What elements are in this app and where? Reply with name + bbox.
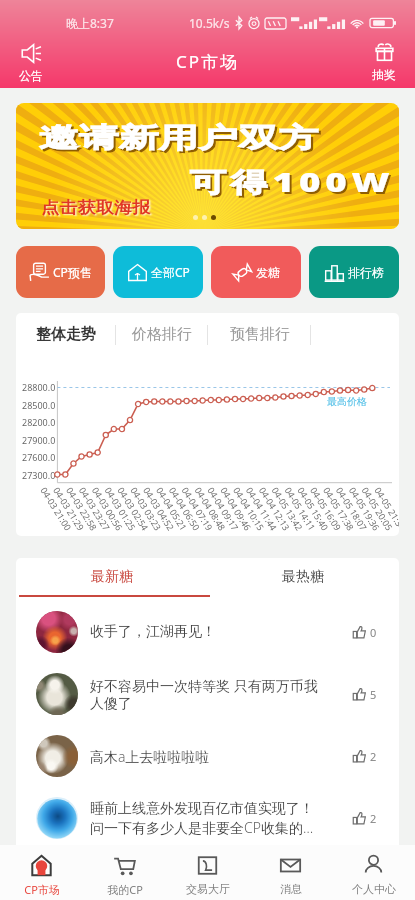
staticText: 排行榜 [348, 265, 384, 280]
staticText: 好不容易中一次特等奖 只有两万币我 [90, 676, 318, 695]
staticText: 整体走势 [36, 325, 96, 344]
staticText: 问一下有多少人是非要全CP收集的… [90, 818, 314, 837]
button[interactable]: 睡前上线意外发现百亿市值实现了！ [16, 787, 399, 849]
button[interactable]: CP预售 [16, 246, 105, 298]
staticText: 高木a上去啦啦啦啦 [90, 747, 210, 766]
staticText: 可得100W [190, 163, 395, 200]
button[interactable]: 价格排行 [116, 313, 208, 356]
button[interactable]: 我的CP [83, 845, 166, 900]
button[interactable]: 好不容易中一次特等奖 只有两万币我 [16, 663, 399, 725]
staticText: 预售排行 [230, 325, 290, 344]
staticText: 我的CP [107, 882, 143, 897]
staticText: 最新糖 [91, 568, 133, 586]
staticText: 个人中心 [352, 882, 396, 896]
button[interactable]: 最热糖 [207, 558, 399, 595]
staticText: 消息 [280, 882, 302, 896]
staticText: 5 [370, 687, 377, 702]
button[interactable]: 最新糖 [16, 558, 207, 595]
button[interactable]: 0 [349, 625, 381, 640]
staticText: 收手了，江湖再见！ [90, 623, 216, 641]
staticText: CP预售 [53, 264, 92, 280]
staticText: 公告 [19, 68, 43, 83]
button[interactable]: 邀请新用户双方 [16, 103, 399, 229]
staticText: 睡前上线意外发现百亿市值实现了！ [90, 800, 314, 818]
staticText: CP市场 [176, 50, 240, 73]
staticText: 晚上8:37 [66, 15, 114, 31]
staticText: 邀请新用户双方 [39, 121, 319, 155]
staticText: 点击获取海报 [41, 198, 150, 218]
staticText: 抽奖 [372, 67, 396, 82]
button[interactable]: 整体走势 [16, 313, 116, 356]
staticText: 2 [370, 749, 377, 764]
button[interactable]: 抽奖 [367, 41, 401, 84]
button[interactable]: 排行榜 [309, 246, 399, 298]
staticText: 人傻了 [90, 695, 132, 713]
button[interactable]: 交易大厅 [166, 845, 249, 900]
button[interactable]: 2 [349, 811, 381, 826]
staticText: 全部CP [151, 264, 190, 280]
staticText: 10.5k/s [189, 15, 230, 31]
staticText: 0 [370, 625, 377, 640]
button[interactable]: 公告 [14, 41, 48, 85]
button[interactable]: 2 [349, 749, 381, 764]
staticText: CP市场 [24, 882, 60, 897]
button[interactable]: 全部CP [113, 246, 203, 298]
button[interactable]: 个人中心 [332, 845, 415, 900]
button[interactable]: 收手了，江湖再见！ [16, 601, 399, 663]
staticText: 交易大厅 [186, 882, 230, 896]
staticText: 发糖 [256, 265, 280, 280]
button[interactable]: 预售排行 [208, 313, 311, 356]
staticText: 2 [370, 811, 377, 826]
staticText: 最热糖 [282, 568, 324, 586]
button[interactable]: 5 [349, 687, 381, 702]
staticText: 价格排行 [132, 325, 192, 344]
button[interactable]: 消息 [249, 845, 332, 900]
button[interactable]: CP市场 [0, 845, 83, 900]
button[interactable]: 发糖 [211, 246, 301, 298]
button[interactable]: 高木a上去啦啦啦啦 [16, 725, 399, 787]
